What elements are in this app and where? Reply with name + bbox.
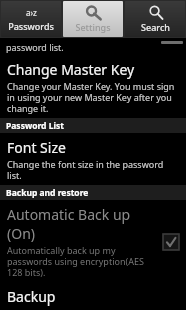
staticText: password list.: [6, 41, 64, 53]
button[interactable]: Automatic Back up (On): [0, 200, 186, 282]
staticText: Backup: [7, 287, 56, 306]
other: Search: [147, 5, 165, 20]
button[interactable]: Font Size: [0, 133, 186, 185]
button[interactable]: Settings: [63, 1, 123, 37]
staticText: Automatic Back up (On): [7, 205, 157, 243]
button[interactable]: a›z: [1, 1, 61, 37]
staticText: Change Master Key: [7, 60, 135, 79]
staticText: Change your Master Key. You must sign in…: [7, 80, 179, 114]
staticText: Passwords: [8, 20, 54, 32]
staticText: Change the font size in the password lis…: [7, 158, 179, 181]
other: Settings: [84, 5, 102, 20]
staticText: Automatically back up my passwords using…: [7, 244, 157, 278]
button[interactable]: Change Master Key: [0, 55, 186, 118]
staticText: Password List: [6, 120, 64, 132]
staticText: a›z: [26, 7, 37, 18]
other: Automatic backup toggle: [161, 232, 181, 252]
button[interactable]: Backup: [0, 282, 186, 310]
staticText: Font Size: [7, 138, 66, 157]
staticText: Backup and restore: [6, 187, 89, 199]
staticText: Search: [141, 21, 170, 33]
staticText: Settings: [75, 21, 111, 33]
button[interactable]: Search: [125, 1, 185, 37]
